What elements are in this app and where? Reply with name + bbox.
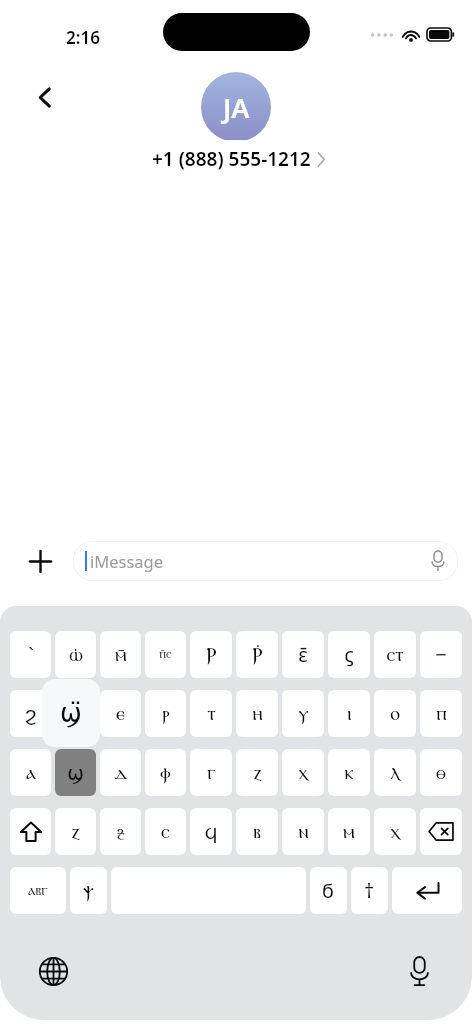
staticText: ⲕ: [344, 763, 354, 783]
button[interactable]: ⳉ: [100, 808, 141, 855]
staticText: ⲱ̇: [69, 645, 83, 665]
staticText: ⲥⲧ: [386, 645, 404, 665]
staticText: JA: [223, 89, 250, 126]
staticText: ⲉ: [116, 704, 125, 724]
button[interactable]: ⲙ̄: [100, 631, 141, 678]
button[interactable]: Shift: [10, 808, 51, 855]
staticText: ⲣ: [162, 704, 170, 724]
button[interactable]: ⲣ: [145, 690, 186, 737]
button[interactable]: ⲓ: [328, 690, 370, 737]
staticText: ⲃ: [253, 822, 261, 842]
button[interactable]: −: [420, 631, 462, 678]
button[interactable]: ε̄: [282, 631, 324, 678]
button[interactable]: Backspace: [420, 808, 462, 855]
button[interactable]: ⲃ: [236, 808, 278, 855]
button[interactable]: ⲅ: [190, 749, 232, 796]
button[interactable]: ⲩ: [282, 690, 324, 737]
staticText: ⳉ: [117, 822, 125, 842]
button[interactable]: ⲧ: [190, 690, 232, 737]
button[interactable]: ⲍ: [55, 808, 96, 855]
button[interactable]: ⲛ: [282, 808, 324, 855]
staticText: ⲁ: [26, 763, 36, 783]
button[interactable]: ϣ: [55, 690, 96, 737]
staticText: ⲩ: [298, 704, 309, 724]
button[interactable]: Add attachment: [18, 539, 62, 583]
other: Backspace: [428, 822, 454, 841]
staticText: ⲥ: [161, 822, 170, 842]
button[interactable]: JA: [201, 72, 271, 142]
button[interactable]: ⲯ: [70, 867, 107, 914]
button[interactable]: ⲥⲧ: [374, 631, 416, 678]
button[interactable]: `: [10, 631, 51, 678]
button[interactable]: ⲡ̄ⲥ: [145, 631, 186, 678]
button[interactable]: ϩ: [10, 690, 51, 737]
button[interactable]: ⲗ: [374, 749, 416, 796]
button[interactable]: ⲑ: [420, 749, 462, 796]
button[interactable]: ⲍ: [236, 749, 278, 796]
staticText: ⲭ: [390, 822, 400, 842]
staticText: ⲑ: [436, 763, 446, 783]
staticText: +1 (888) 555-1212: [152, 146, 311, 172]
button[interactable]: ϭ: [310, 867, 347, 914]
staticText: 2:16: [66, 26, 100, 49]
staticText: ⲯ: [83, 881, 94, 901]
button[interactable]: †: [351, 867, 388, 914]
staticText: Ⲣ̇: [252, 645, 263, 665]
staticText: ⲛ: [298, 822, 309, 842]
other: Return: [415, 881, 440, 900]
staticText: `: [28, 641, 34, 668]
other: Dictate: [430, 551, 446, 571]
staticText: ⲗ: [390, 763, 400, 783]
staticText: ⲡ: [436, 704, 447, 724]
staticText: ε̄: [298, 641, 308, 668]
staticText: ⲅ: [207, 763, 216, 783]
staticText: ⲇ: [114, 763, 128, 783]
button[interactable]: ϛ: [328, 631, 370, 678]
staticText: ⲏ: [252, 704, 263, 724]
button[interactable]: Ⲣ̇: [236, 631, 278, 678]
button[interactable]: ϥ: [190, 808, 232, 855]
button[interactable]: +1 (888) 555-1212: [135, 140, 338, 179]
staticText: ⲍ: [71, 822, 80, 842]
staticText: ϣ̈: [60, 698, 82, 728]
staticText: ⲁⲃⲅ: [28, 883, 48, 898]
button[interactable]: ⲁⲃⲅ: [10, 867, 66, 914]
staticText: †: [364, 877, 375, 904]
button[interactable]: ⲡ: [420, 690, 462, 737]
button[interactable]: ⲙ: [328, 808, 370, 855]
button[interactable]: ⲭ: [374, 808, 416, 855]
staticText: ϩ: [24, 702, 37, 725]
staticText: ϣ: [67, 761, 84, 784]
button[interactable]: Change keyboard: [32, 950, 74, 992]
staticText: ⲟ: [390, 704, 400, 724]
button[interactable]: Dictation: [398, 950, 440, 992]
button[interactable]: ⲫ: [145, 749, 186, 796]
staticText: ⲡ̄ⲥ: [159, 648, 172, 661]
button[interactable]: iMessage: [73, 541, 458, 581]
staticText: −: [435, 641, 447, 668]
staticText: ⲓ: [347, 704, 352, 724]
button[interactable]: ⲉ: [100, 690, 141, 737]
button[interactable]: Ⲣ: [190, 631, 232, 678]
button[interactable]: ⲭ: [282, 749, 324, 796]
staticText: ⲍ: [253, 763, 262, 783]
button[interactable]: ⲕ: [328, 749, 370, 796]
button[interactable]: Return: [392, 867, 462, 914]
button[interactable]: ⲟ: [374, 690, 416, 737]
button[interactable]: ϣ: [55, 749, 96, 796]
staticText: ϥ: [204, 820, 218, 843]
staticText: ⲧ: [207, 704, 216, 724]
staticText: ⲙ̄: [115, 645, 127, 665]
button[interactable]: ⲥ: [145, 808, 186, 855]
staticText: ϭ: [322, 879, 335, 902]
button[interactable]: ⲇ: [100, 749, 141, 796]
button[interactable]: ⲏ: [236, 690, 278, 737]
staticText: iMessage: [90, 550, 164, 572]
staticText: ⲙ: [343, 822, 355, 842]
button[interactable]: ⲁ: [10, 749, 51, 796]
staticText: ϛ: [344, 641, 354, 668]
staticText: ⲫ: [160, 763, 171, 783]
button[interactable]: ⲱ̇: [55, 631, 96, 678]
button[interactable]: Back: [18, 70, 72, 124]
